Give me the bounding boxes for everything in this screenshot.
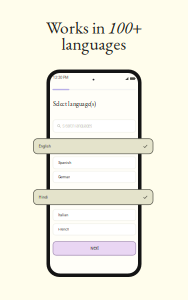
staticText: 100+ [108, 16, 142, 39]
staticText: Search languages [62, 124, 92, 128]
staticText: Italian [58, 213, 68, 217]
staticText: Spanish [58, 161, 71, 165]
button[interactable]: Next [53, 242, 136, 255]
button[interactable]: Spanish [53, 157, 136, 169]
staticText: 12:30 PM [53, 75, 68, 80]
staticText: languages [61, 32, 126, 55]
button[interactable]: Search languages [53, 120, 136, 132]
staticText: French [58, 227, 69, 231]
button[interactable]: German [53, 171, 136, 183]
button[interactable]: Hindi [33, 190, 153, 205]
button[interactable]: Italian [53, 209, 136, 221]
staticText: Works in [46, 16, 108, 39]
staticText: German [58, 175, 70, 179]
staticText: English [39, 144, 51, 148]
button[interactable]: French [53, 224, 136, 235]
staticText: Next [90, 246, 98, 251]
staticText: Hindi [39, 195, 48, 199]
button[interactable]: English [33, 139, 153, 154]
staticText: Select language(s) [53, 100, 96, 108]
